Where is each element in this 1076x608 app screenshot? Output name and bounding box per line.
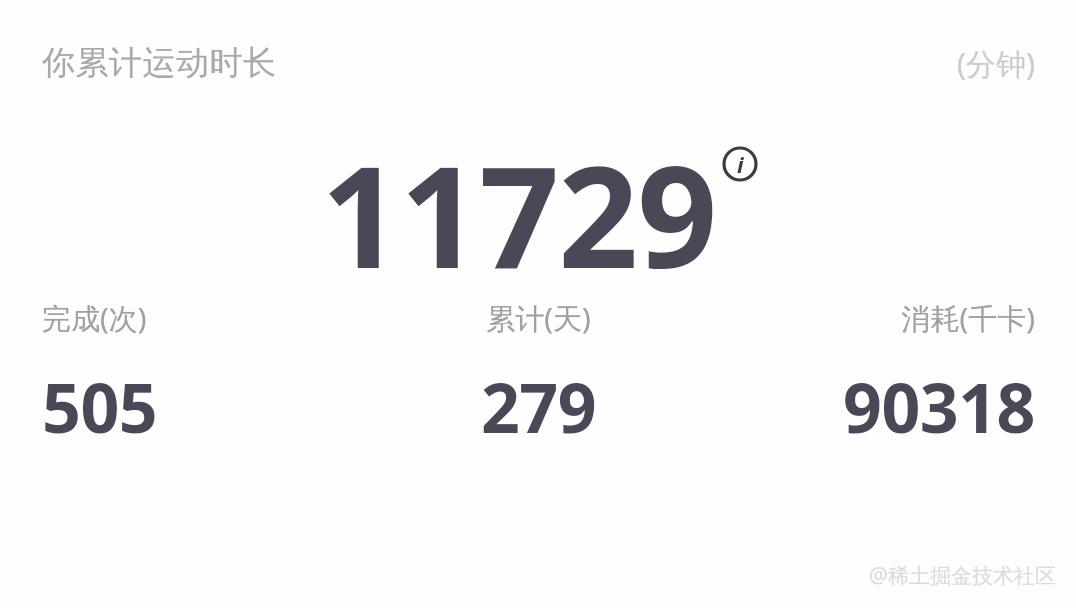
button[interactable]: 你累计运动时长 (42, 42, 277, 84)
staticText: 279 (373, 360, 704, 453)
staticText: 11729 (321, 118, 717, 309)
button[interactable]: 消耗(千卡) (704, 298, 1035, 453)
staticText: i (737, 149, 744, 179)
button[interactable]: 累计(天) (373, 298, 704, 453)
staticText: 90318 (704, 360, 1035, 453)
button[interactable]: Info (721, 145, 759, 183)
staticText: @稀土掘金技术社区 (869, 561, 1056, 590)
staticText: 505 (42, 360, 373, 453)
button[interactable]: 完成(次) (42, 298, 373, 453)
staticText: (分钟) (957, 43, 1035, 84)
staticText: 消耗(千卡) (704, 298, 1035, 338)
staticText: 累计(天) (373, 298, 704, 338)
staticText: 你累计运动时长 (42, 42, 277, 84)
staticText: 完成(次) (42, 298, 373, 338)
